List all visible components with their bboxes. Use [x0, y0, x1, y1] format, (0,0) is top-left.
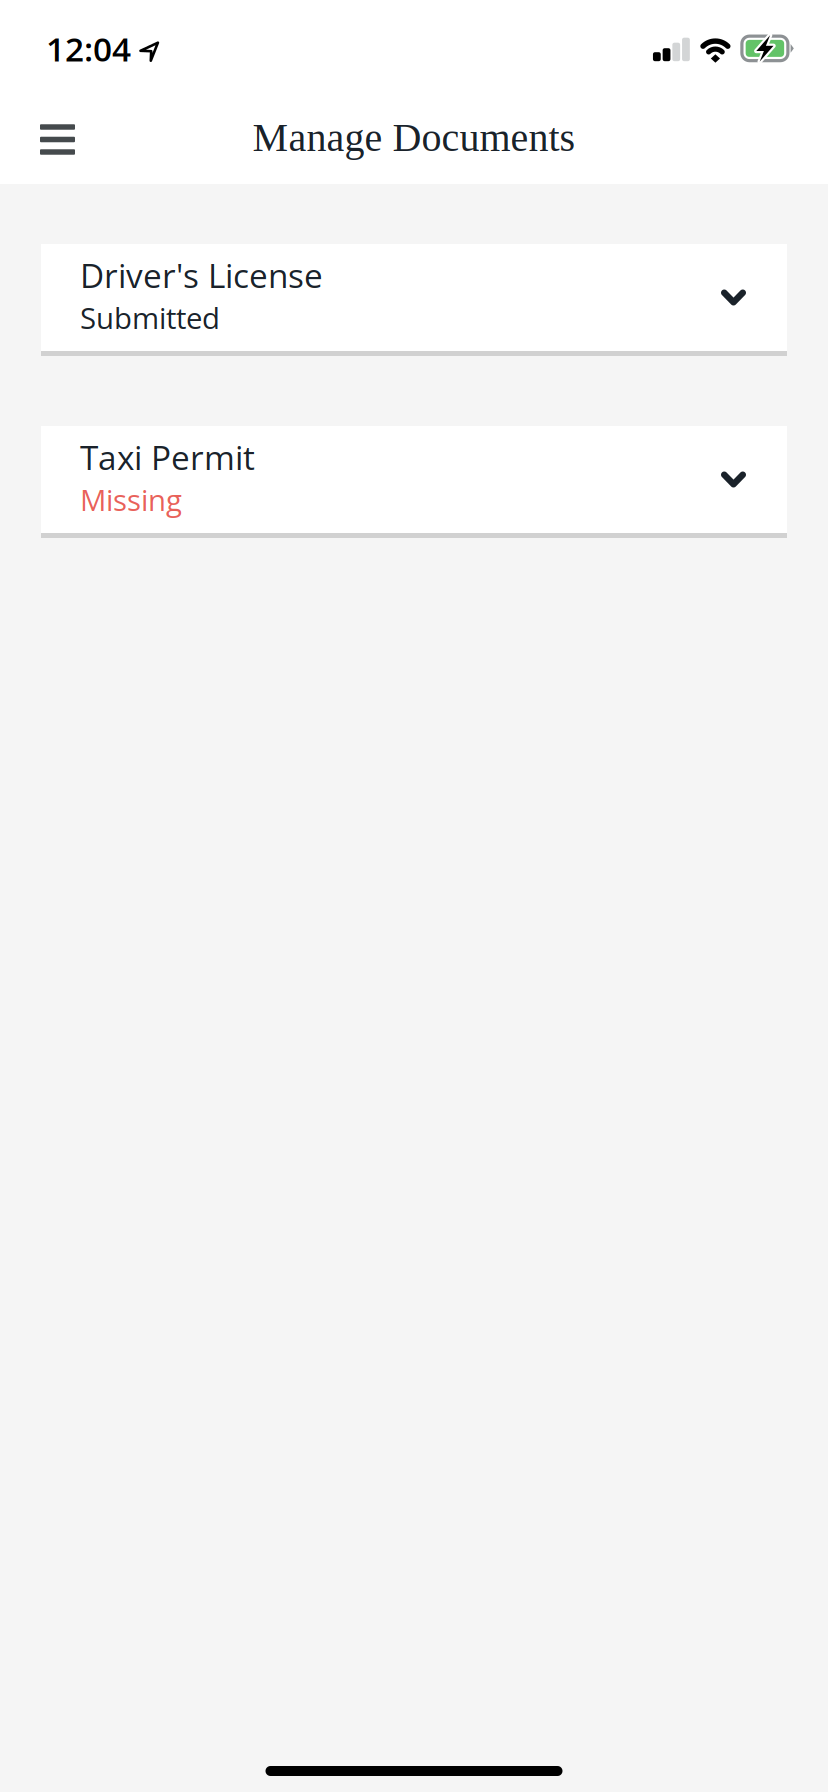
staticText: Taxi Permit: [80, 434, 255, 480]
button[interactable]: Menu: [0, 88, 105, 184]
staticText: Driver's License: [80, 252, 323, 298]
staticText: Manage Documents: [252, 115, 575, 160]
button[interactable]: Taxi Permit: [41, 426, 787, 538]
staticText: Missing: [80, 480, 182, 520]
button[interactable]: Driver's License: [41, 244, 787, 356]
staticText: 12:04: [46, 26, 131, 71]
staticText: Submitted: [80, 298, 220, 338]
